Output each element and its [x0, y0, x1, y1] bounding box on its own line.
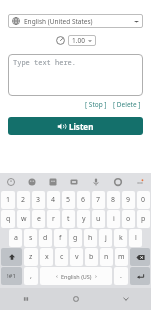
button[interactable]: i	[107, 210, 120, 228]
button[interactable]: Stickers	[42, 173, 63, 191]
button[interactable]: Settings	[107, 173, 129, 191]
button[interactable]: 1.00	[68, 35, 96, 46]
button[interactable]: English (United States)	[8, 14, 143, 28]
button[interactable]: 8	[107, 191, 120, 209]
button[interactable]: Emoji	[21, 173, 42, 191]
staticText: n	[104, 252, 109, 262]
staticText: 6	[81, 195, 86, 205]
staticText: c	[60, 252, 64, 262]
button[interactable]: 3	[32, 191, 45, 209]
button[interactable]: 1	[1, 191, 15, 209]
button[interactable]: ,	[24, 267, 38, 285]
button[interactable]: r	[47, 210, 60, 228]
button[interactable]: d	[39, 229, 52, 247]
button[interactable]: x	[40, 248, 53, 266]
button[interactable]: o	[122, 210, 135, 228]
staticText: t	[67, 214, 70, 224]
button[interactable]: ‹	[40, 267, 112, 285]
button[interactable]: g	[69, 229, 82, 247]
staticText: q	[6, 214, 11, 224]
staticText: Listen	[69, 121, 94, 132]
staticText: s	[29, 233, 33, 243]
staticText: i	[113, 214, 115, 224]
staticText: g	[73, 233, 78, 243]
button[interactable]	[130, 267, 150, 285]
staticText: English (US)	[61, 273, 92, 280]
button[interactable]: s	[24, 229, 37, 247]
staticText: 1	[6, 195, 11, 205]
button[interactable]: 9	[122, 191, 135, 209]
button[interactable]: 0	[137, 191, 150, 209]
button[interactable]: 5	[62, 191, 75, 209]
button[interactable]: .	[114, 267, 128, 285]
button[interactable]: y	[77, 210, 90, 228]
button[interactable]: q	[1, 210, 15, 228]
staticText: m	[118, 252, 125, 262]
staticText: [ Stop ]	[85, 100, 107, 109]
staticText: b	[89, 252, 94, 262]
button[interactable]: b	[85, 248, 98, 266]
staticText: 5	[66, 195, 71, 205]
staticText: h	[88, 233, 93, 243]
button[interactable]: Recents	[0, 288, 51, 310]
button[interactable]: u	[92, 210, 105, 228]
button[interactable]: Hide keyboard	[101, 288, 151, 310]
staticText: English (United States)	[24, 17, 93, 26]
button[interactable]: Voice input	[85, 173, 107, 191]
button[interactable]: z	[24, 248, 38, 266]
staticText: f	[59, 233, 62, 243]
button[interactable]: 7	[92, 191, 105, 209]
button[interactable]: Listen	[8, 117, 143, 135]
button[interactable]: l	[129, 229, 142, 247]
staticText: 3	[36, 195, 41, 205]
staticText: v	[75, 252, 79, 262]
button[interactable]: Search	[0, 173, 21, 191]
button[interactable]: k	[114, 229, 127, 247]
button[interactable]: a	[9, 229, 22, 247]
button[interactable]: Home	[51, 288, 101, 310]
button[interactable]: !#1	[1, 267, 22, 285]
staticText: d	[43, 233, 48, 243]
button[interactable]: 6	[77, 191, 90, 209]
staticText: 1.00	[72, 36, 85, 45]
staticText: k	[119, 233, 123, 243]
button[interactable]: m	[115, 248, 128, 266]
staticText: ›	[95, 272, 97, 280]
staticText: y	[82, 214, 86, 224]
button[interactable]: 2	[17, 191, 30, 209]
button[interactable]: p	[137, 210, 150, 228]
button[interactable]: e	[32, 210, 45, 228]
button[interactable]: f	[54, 229, 67, 247]
staticText: x	[45, 252, 49, 262]
button[interactable]: Type text here.	[8, 54, 143, 96]
staticText: a	[14, 233, 18, 243]
staticText: 2	[21, 195, 26, 205]
staticText: .	[120, 271, 122, 281]
button[interactable]: [ Delete ]	[111, 99, 143, 110]
staticText: l	[135, 233, 137, 243]
staticText: ‹	[56, 272, 58, 280]
staticText: 4	[51, 195, 56, 205]
staticText: 0	[141, 195, 146, 205]
staticText: o	[126, 214, 131, 224]
button[interactable]: [ Stop ]	[83, 99, 109, 110]
button[interactable]: 4	[47, 191, 60, 209]
button[interactable]	[130, 248, 150, 266]
button[interactable]: n	[100, 248, 113, 266]
staticText: ,	[30, 271, 32, 281]
button[interactable]: j	[99, 229, 112, 247]
staticText: Type text here.	[13, 58, 76, 68]
button[interactable]: GIF	[63, 173, 85, 191]
button[interactable]: More	[129, 173, 151, 191]
staticText: 7	[96, 195, 101, 205]
button[interactable]: t	[62, 210, 75, 228]
staticText: e	[37, 214, 41, 224]
staticText: [ Delete ]	[113, 100, 141, 109]
button[interactable]: w	[17, 210, 30, 228]
button[interactable]: h	[84, 229, 97, 247]
button[interactable]: c	[55, 248, 68, 266]
staticText: 8	[111, 195, 116, 205]
button[interactable]	[1, 248, 22, 266]
button[interactable]: v	[70, 248, 83, 266]
staticText: !#1	[7, 272, 16, 280]
